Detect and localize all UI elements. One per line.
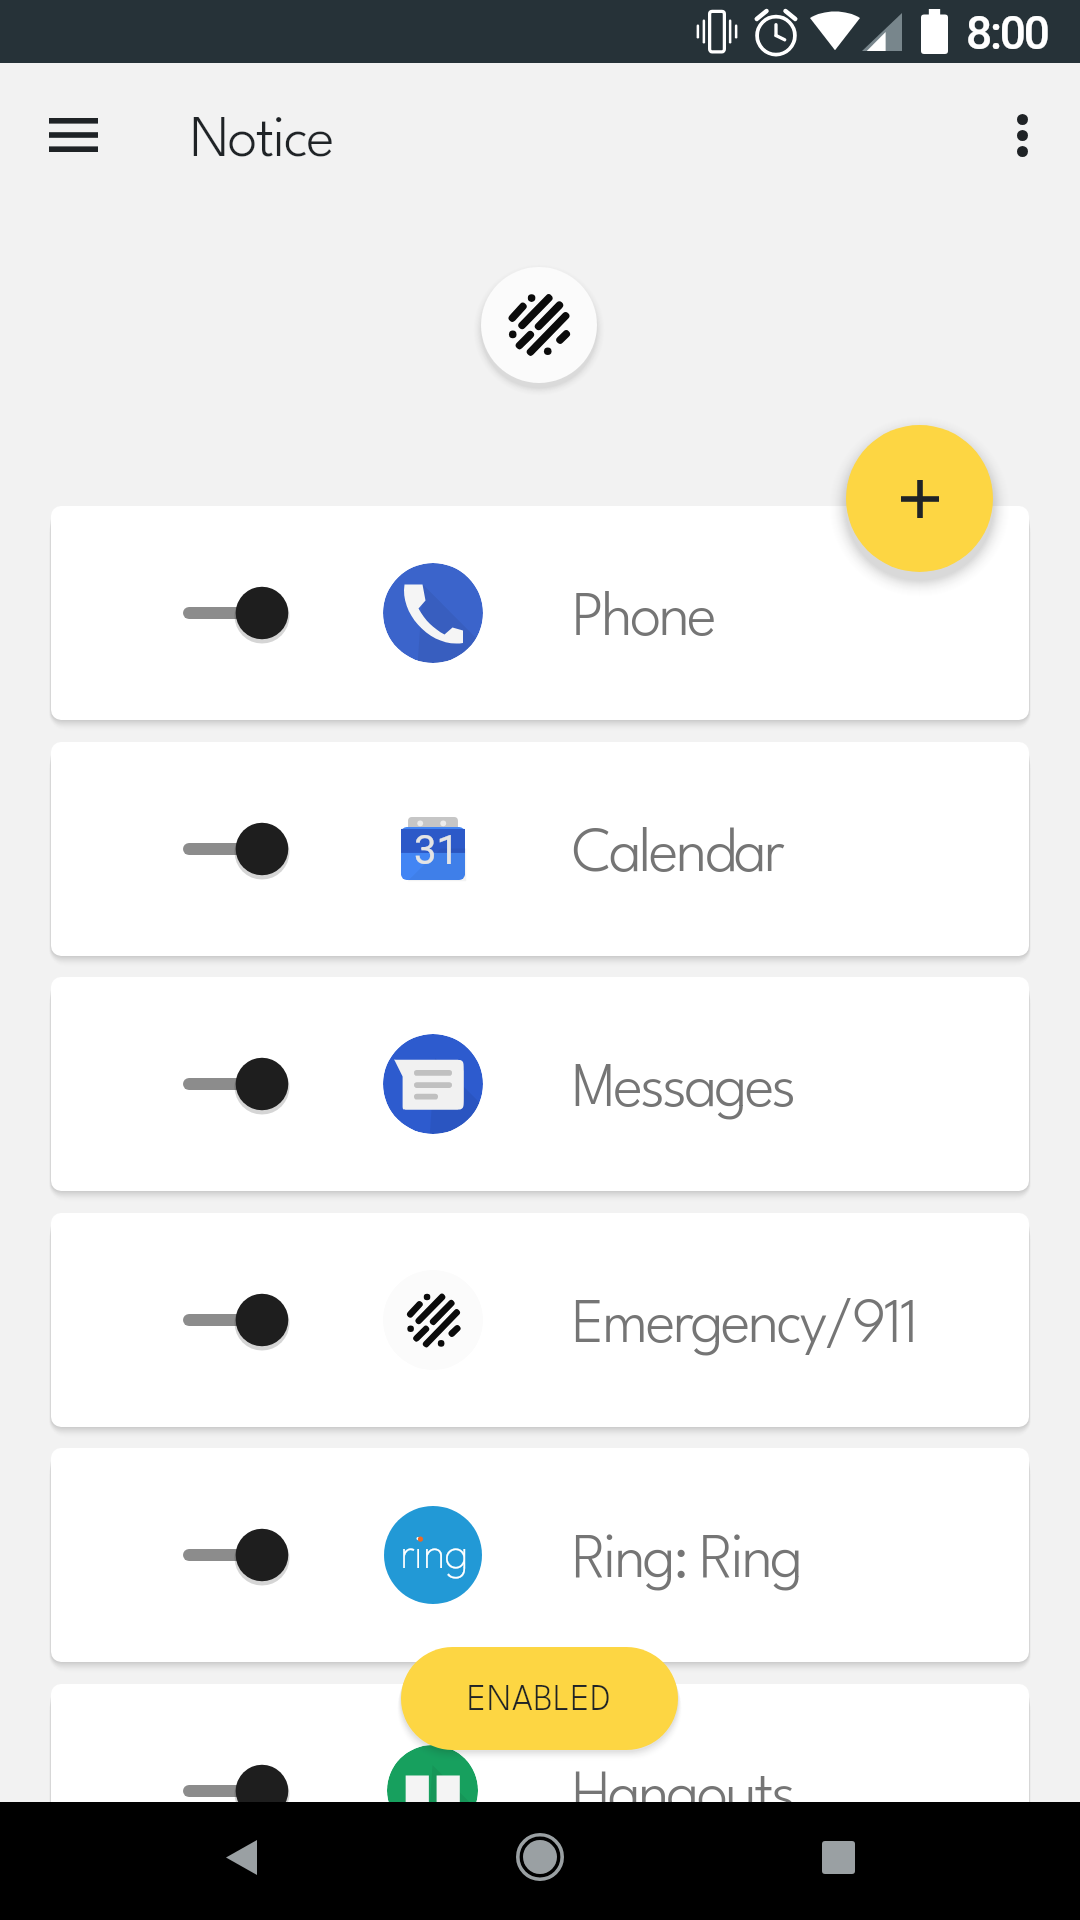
button[interactable]: 31 bbox=[51, 742, 1029, 956]
button[interactable]: Phone bbox=[51, 506, 1029, 720]
button[interactable]: Menu bbox=[24, 86, 122, 184]
staticText: Calendar bbox=[572, 827, 783, 885]
staticText: 31 bbox=[414, 827, 459, 874]
staticText: ring bbox=[400, 1535, 469, 1578]
staticText: Notice bbox=[190, 114, 333, 169]
button[interactable]: Hangouts bbox=[51, 1684, 1029, 1898]
button[interactable]: Add bbox=[846, 425, 993, 572]
button[interactable]: More options bbox=[973, 86, 1071, 184]
button[interactable]: ring bbox=[51, 1448, 1029, 1662]
button[interactable]: Emergency/911 bbox=[51, 1213, 1029, 1427]
staticText: Hangouts bbox=[572, 1769, 794, 1827]
staticText: Emergency/911 bbox=[572, 1298, 916, 1356]
staticText: 8:00 bbox=[966, 6, 1048, 60]
button[interactable]: Home bbox=[495, 1812, 585, 1902]
button[interactable]: Back bbox=[196, 1812, 286, 1902]
staticText: Phone bbox=[572, 591, 715, 649]
staticText: Messages bbox=[572, 1062, 794, 1120]
button[interactable]: Messages bbox=[51, 977, 1029, 1191]
button[interactable]: Recents bbox=[793, 1812, 883, 1902]
staticText: ENABLED bbox=[467, 1684, 612, 1718]
staticText: Ring: Ring bbox=[572, 1533, 801, 1591]
button[interactable]: ENABLED bbox=[401, 1647, 678, 1750]
